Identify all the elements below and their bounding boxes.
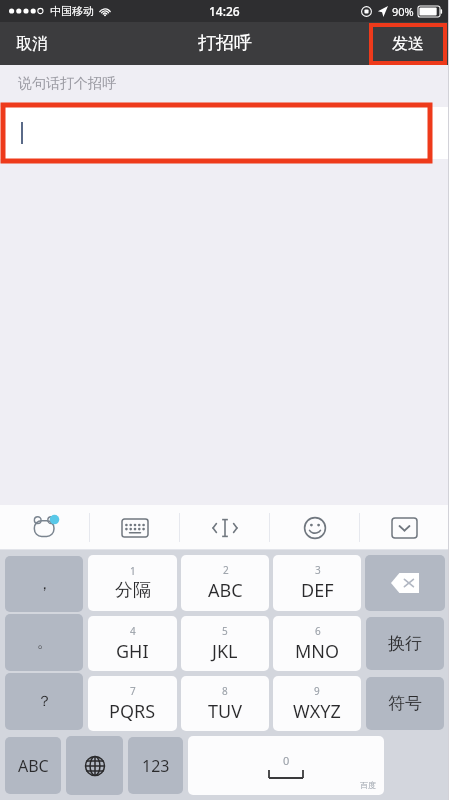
staticText: 3: [315, 563, 321, 577]
staticText: 90%: [392, 4, 414, 19]
staticText: 取消: [16, 34, 48, 54]
staticText: 符号: [388, 693, 422, 714]
staticText: ，: [37, 575, 52, 594]
button[interactable]: Emoji: [270, 505, 359, 550]
staticText: 中国移动: [50, 4, 94, 18]
button[interactable]: 9: [273, 676, 361, 731]
button[interactable]: 换行: [366, 617, 444, 670]
button[interactable]: 7: [88, 676, 177, 731]
staticText: 。: [37, 633, 52, 652]
staticText: 分隔: [115, 579, 151, 602]
staticText: 14:26: [209, 3, 240, 19]
staticText: TUV: [208, 699, 242, 724]
button[interactable]: [0, 107, 449, 159]
button[interactable]: 1: [88, 555, 177, 611]
staticText: WXYZ: [293, 699, 341, 724]
staticText: PQRS: [109, 699, 156, 724]
staticText: 0: [283, 753, 290, 768]
staticText: 6: [315, 624, 321, 638]
button[interactable]: Hide keyboard: [360, 505, 449, 550]
staticText: ABC: [18, 755, 49, 777]
button[interactable]: Keyboard settings: [90, 505, 179, 550]
button[interactable]: Baidu input method: [0, 505, 89, 550]
button[interactable]: ，: [5, 556, 83, 612]
staticText: 8: [222, 684, 228, 698]
staticText: JKL: [212, 639, 238, 664]
staticText: 5: [222, 624, 228, 638]
staticText: MNO: [295, 639, 340, 664]
button[interactable]: 123: [128, 737, 183, 794]
button[interactable]: Switch language: [66, 736, 123, 795]
staticText: GHI: [116, 639, 149, 664]
staticText: 4: [130, 624, 136, 638]
button[interactable]: Space: [188, 736, 384, 795]
staticText: 7: [130, 684, 136, 698]
button[interactable]: ABC: [5, 737, 61, 794]
staticText: ？: [37, 692, 52, 711]
staticText: 1: [130, 564, 136, 578]
staticText: 9: [314, 684, 320, 698]
staticText: 2: [223, 563, 229, 577]
staticText: 发送: [392, 34, 424, 54]
button[interactable]: 3: [273, 555, 361, 611]
button[interactable]: Backspace: [365, 555, 445, 611]
staticText: 换行: [388, 633, 422, 654]
button[interactable]: 4: [88, 616, 177, 671]
button[interactable]: ？: [5, 673, 83, 730]
button[interactable]: 6: [273, 616, 361, 671]
button[interactable]: 取消: [6, 28, 58, 60]
staticText: DEF: [301, 578, 334, 603]
staticText: 百度: [360, 780, 376, 790]
staticText: 打招呼: [198, 32, 252, 55]
button[interactable]: 8: [181, 676, 269, 731]
button[interactable]: 2: [181, 555, 269, 611]
staticText: 说句话打个招呼: [18, 75, 116, 93]
button[interactable]: 符号: [366, 677, 444, 730]
button[interactable]: Cursor control: [180, 505, 269, 550]
staticText: ABC: [208, 578, 243, 603]
button[interactable]: 发送: [371, 25, 445, 63]
button[interactable]: 5: [181, 616, 269, 671]
button[interactable]: 。: [5, 614, 83, 671]
staticText: 123: [142, 755, 170, 777]
